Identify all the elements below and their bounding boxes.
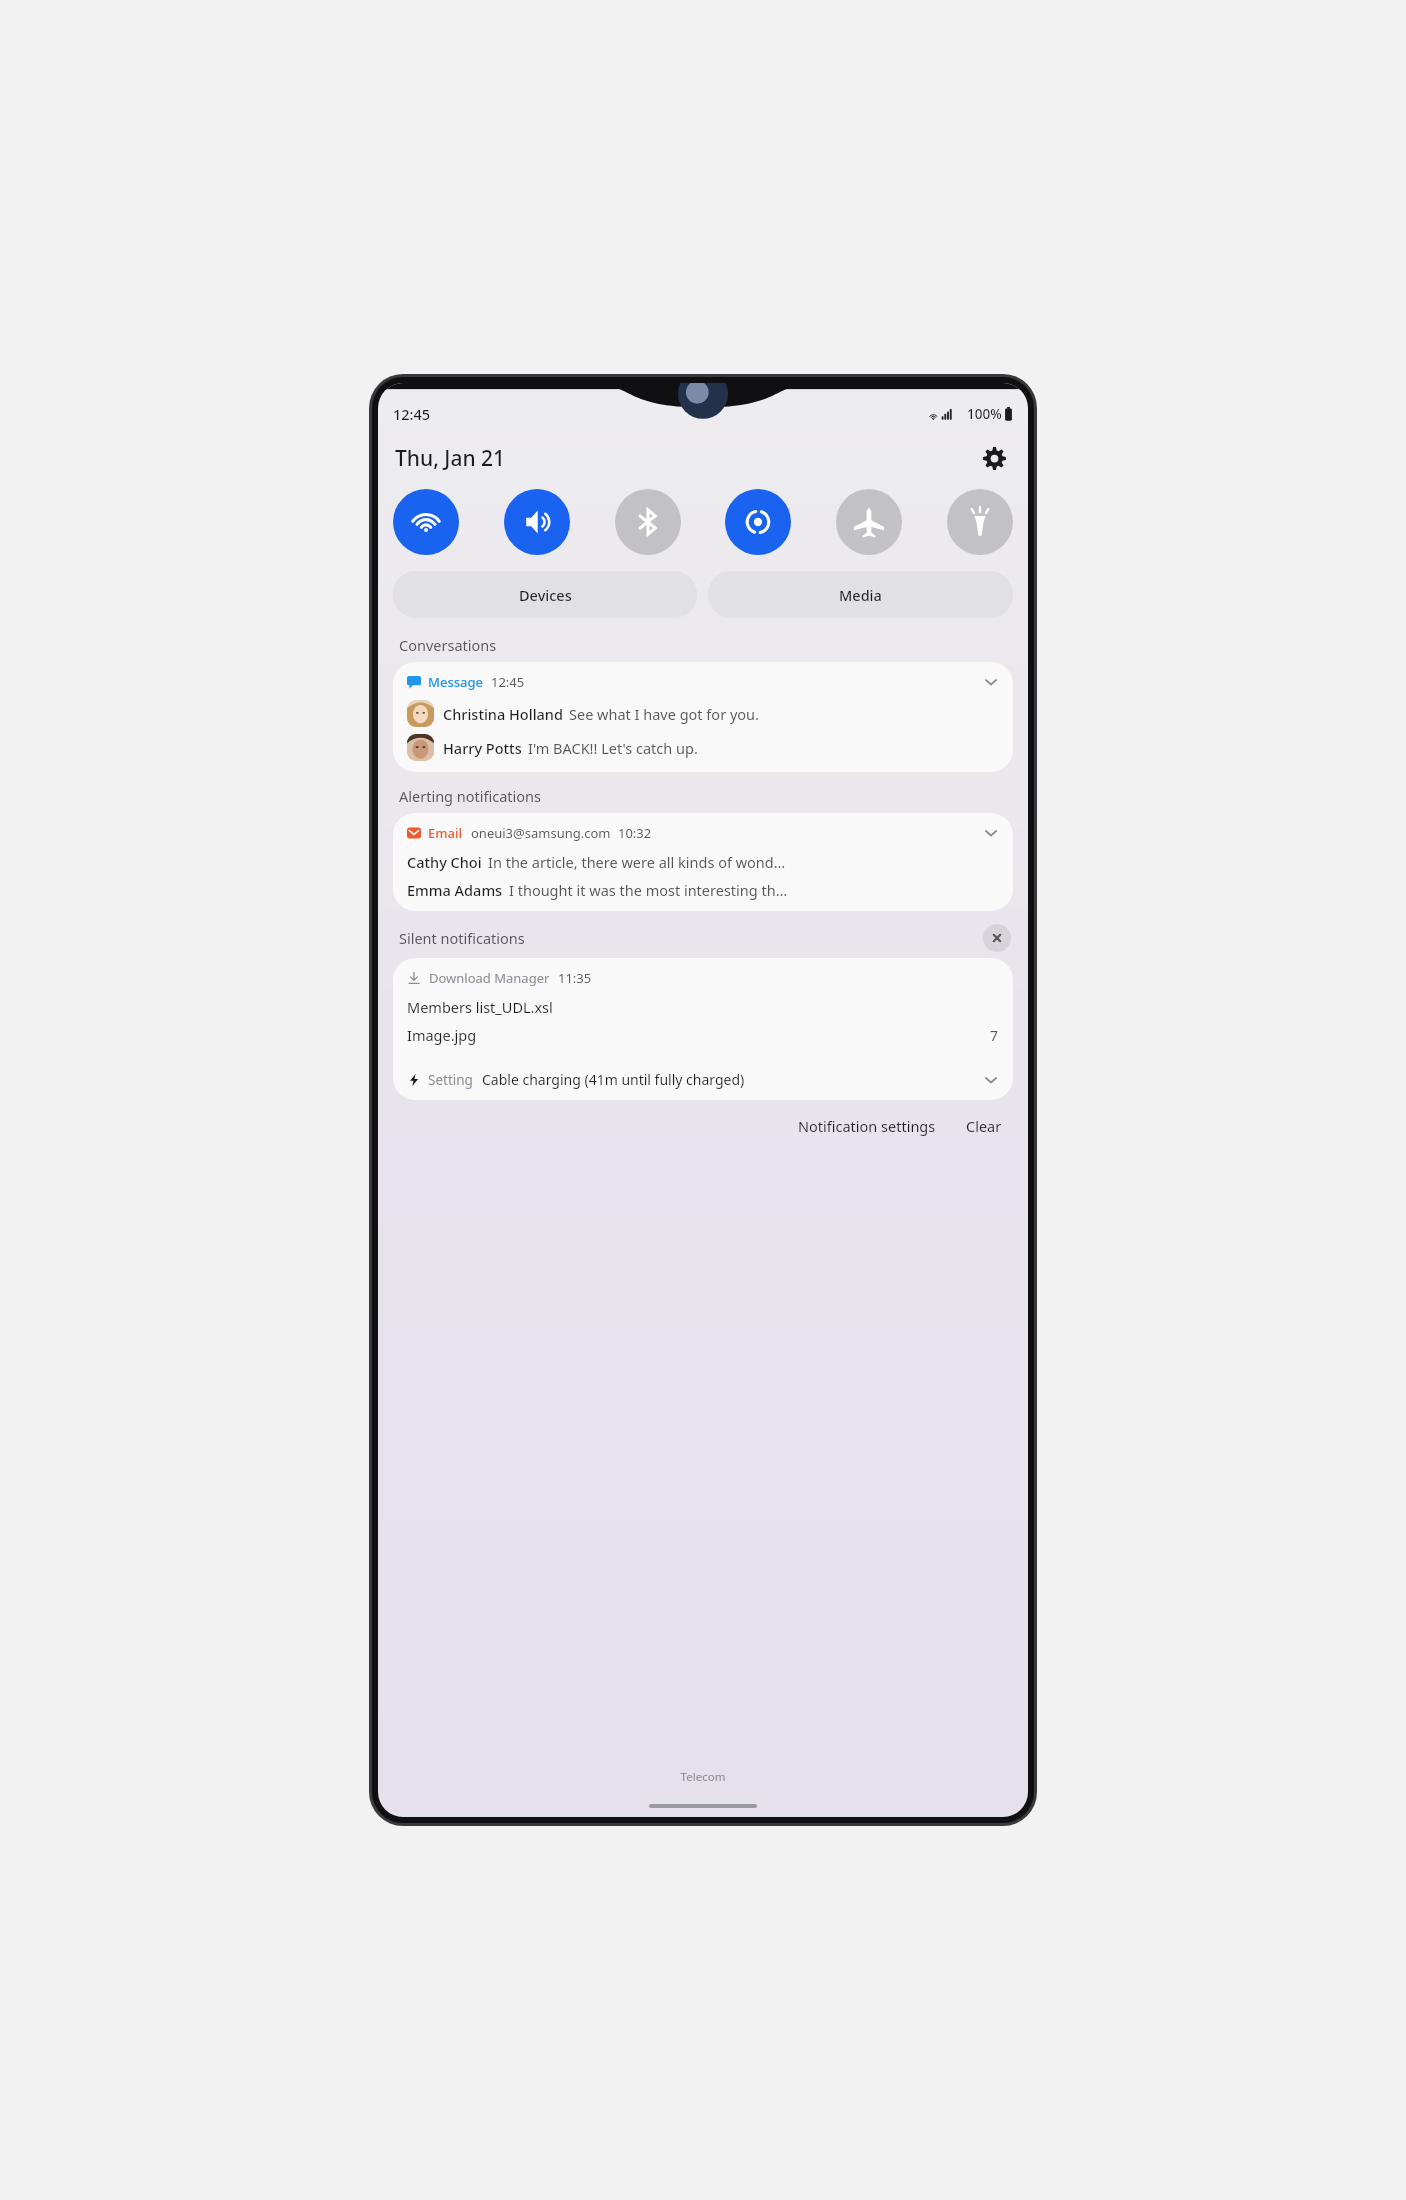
button[interactable]: Auto rotate — [725, 489, 791, 555]
button[interactable]: Airplane mode — [836, 489, 902, 555]
staticText: Harry Potts — [443, 738, 522, 758]
button[interactable]: Media — [708, 571, 1013, 618]
button[interactable]: Settings — [977, 441, 1011, 475]
staticText: Email — [428, 824, 463, 842]
staticText: Media — [839, 585, 882, 605]
button[interactable]: Notification settings — [792, 1112, 942, 1140]
staticText: Telecom — [378, 1769, 1028, 1785]
button[interactable]: Flashlight — [947, 489, 1013, 555]
staticText: Clear — [966, 1116, 1002, 1136]
staticText: Thu, Jan 21 — [395, 444, 506, 473]
staticText: 7 — [990, 1026, 999, 1045]
staticText: Notification settings — [798, 1116, 936, 1136]
staticText: See what I have got for you. — [569, 704, 999, 724]
button[interactable]: Devices — [393, 571, 697, 618]
staticText: 11:35 — [558, 969, 592, 987]
staticText: Message — [428, 673, 483, 691]
staticText: Alerting notifications — [399, 786, 1011, 806]
staticText: Devices — [519, 585, 572, 605]
button[interactable]: Message — [393, 662, 1013, 772]
button[interactable]: Download Manager — [393, 958, 1013, 1056]
staticText: oneui3@samsung.com — [471, 824, 611, 842]
staticText: 100% — [967, 405, 1002, 423]
staticText: Image.jpg — [407, 1025, 990, 1045]
staticText: Setting — [428, 1071, 473, 1089]
button[interactable]: Setting — [393, 1059, 1013, 1100]
button[interactable]: Clear — [960, 1112, 1008, 1140]
staticText: I'm BACK!! Let's catch up. — [528, 738, 999, 758]
button[interactable]: Sound — [504, 489, 570, 555]
staticText: Christina Holland — [443, 704, 563, 724]
staticText: Members list_UDL.xsl — [407, 997, 553, 1017]
staticText: Cable charging (41m until fully charged) — [482, 1070, 983, 1089]
staticText: 12:45 — [393, 404, 431, 424]
button[interactable]: Bluetooth — [615, 489, 681, 555]
staticText: Download Manager — [429, 969, 550, 987]
button[interactable]: Email — [393, 813, 1013, 911]
button[interactable]: Wi-Fi — [393, 489, 459, 555]
button[interactable]: Clear silent notifications — [983, 924, 1011, 952]
staticText: 10:32 — [618, 824, 652, 842]
staticText: I thought it was the most interesting th… — [509, 880, 999, 900]
staticText: Emma Adams — [407, 880, 503, 900]
staticText: Conversations — [399, 635, 1011, 655]
staticText: 12:45 — [491, 673, 525, 691]
staticText: In the article, there were all kinds of … — [488, 852, 999, 872]
staticText: Silent notifications — [399, 928, 983, 948]
staticText: Cathy Choi — [407, 852, 482, 872]
